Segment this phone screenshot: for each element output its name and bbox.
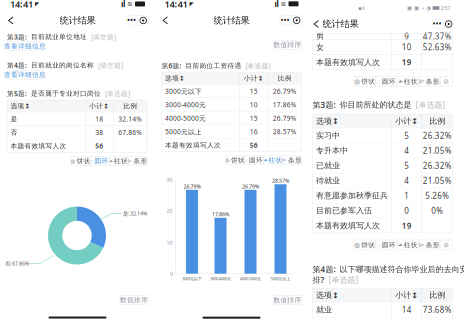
staticText: ⏶ [398,78,403,85]
staticText: 17.86% [212,211,229,218]
staticText: 第4题: [312,264,335,274]
staticText: 排序 [287,41,301,49]
staticText: 查看详细信息 [4,42,46,50]
staticText: 3000元以下 [182,276,202,281]
staticText: ◌ [377,240,381,249]
staticText: [填空题] [94,61,123,70]
staticText: 是否属于专业对口岗位 [27,89,101,98]
staticText: 数值 [273,296,287,304]
button[interactable]: 查看详细信息 [7,42,43,51]
staticText: 小计↕ [395,290,418,300]
button[interactable]: Back [159,14,171,26]
button[interactable]: 排序 [287,296,301,305]
staticText: [单选题] [324,274,358,285]
button[interactable]: More chart options [440,240,452,250]
staticText: 28.57% [273,127,297,136]
staticText: 统计结果 [59,15,95,26]
staticText: ıl [121,0,125,9]
button[interactable]: ⏶ [397,240,418,250]
button[interactable]: Mini program menu [431,19,454,29]
button[interactable]: 排序 [134,295,148,304]
staticText: 饼状 [361,241,375,249]
staticText: ◤ [187,1,193,7]
staticText: 5 [404,160,409,171]
button[interactable]: Back [5,14,17,26]
staticText: 就业 [316,305,332,315]
staticText: ••• [281,16,290,25]
button[interactable]: Back [310,18,322,30]
button[interactable]: More chart options [440,76,452,86]
button[interactable]: ⏶ [263,156,282,165]
staticText: 21.05% [423,145,452,156]
staticText: 条形 [426,77,440,86]
button[interactable]: ⊫ [282,156,301,165]
staticText: 3000元以下 [165,87,202,96]
staticText: 条形 [426,241,440,249]
button[interactable]: Mini program menu [279,16,302,25]
button[interactable]: ◍ [71,156,90,165]
staticText: 第6题: [161,61,181,70]
staticText: [单选题] [241,61,270,70]
staticText: 饼状 [231,156,245,164]
staticText: 是 [10,115,17,123]
button[interactable]: ⏶ [109,156,128,165]
staticText: ◤ [33,1,39,7]
staticText: 统计结果 [322,18,358,30]
button[interactable]: ◌ [90,156,109,165]
staticText: 排序 [287,296,301,304]
staticText: 统计结果 [213,15,249,26]
staticText: 条形 [288,156,302,164]
staticText: 26.32% [423,160,452,171]
button[interactable]: ⊫ [418,76,440,86]
staticText: ⊘ [443,241,449,249]
button[interactable]: ◌ [375,76,397,86]
staticText: 第4题: [7,61,27,70]
button[interactable]: 数值 [273,40,287,49]
button[interactable]: Mini program menu [126,16,149,25]
button[interactable]: 数值 [120,295,134,304]
staticText: 比例 [429,116,445,126]
staticText: ⊫ [419,241,425,249]
staticText: 柱状 [114,157,128,165]
staticText: 19 [402,220,412,231]
button[interactable]: 排序 [287,40,301,49]
button[interactable]: ◌ [244,156,263,165]
button[interactable]: ⊫ [418,240,440,250]
staticText: 47.37% [423,31,452,42]
button[interactable]: 查看详细信息 [7,70,43,79]
button[interactable]: ◌ [375,240,397,250]
button[interactable]: ◍ [354,76,375,86]
staticText: 有意愿参加秋季征兵 [316,191,388,201]
staticText: 5000元以上 [270,276,290,281]
staticText: ◍ [354,78,360,85]
staticText: 14 [402,304,412,315]
staticText: 圆环 [94,157,108,165]
staticText: 选项↕ [316,290,339,300]
staticText: ⊫ [419,78,425,85]
staticText: 19 [402,57,412,67]
button[interactable]: ⏶ [397,76,418,86]
staticText: 38 [95,128,103,137]
staticText: 否 [10,128,17,137]
staticText: 4 [404,145,409,156]
staticText: 30 [166,176,172,183]
staticText: 小计↕ [244,74,264,82]
button[interactable]: ◍ [225,156,244,165]
staticText: 56 [250,141,258,150]
staticText: 0 [404,205,409,216]
staticText: 实习中 [316,131,340,141]
staticText: 查看详细信息 [4,71,46,79]
staticText: 26.79% [242,183,259,190]
staticText: 自主创业 [316,320,348,321]
staticText: 第5题: [7,89,27,98]
staticText: ◍ [354,241,360,249]
staticText: 26.79% [273,114,297,123]
button[interactable]: ⊫ [128,156,147,165]
staticText: 10 [166,239,172,246]
staticText: 10 [402,42,412,52]
button[interactable]: 数值 [273,296,287,305]
button[interactable]: ◍ [354,240,375,250]
staticText: 本题有效填写人次 [165,141,221,149]
staticText: 条形 [133,157,147,165]
staticText: 52.63% [423,42,452,52]
